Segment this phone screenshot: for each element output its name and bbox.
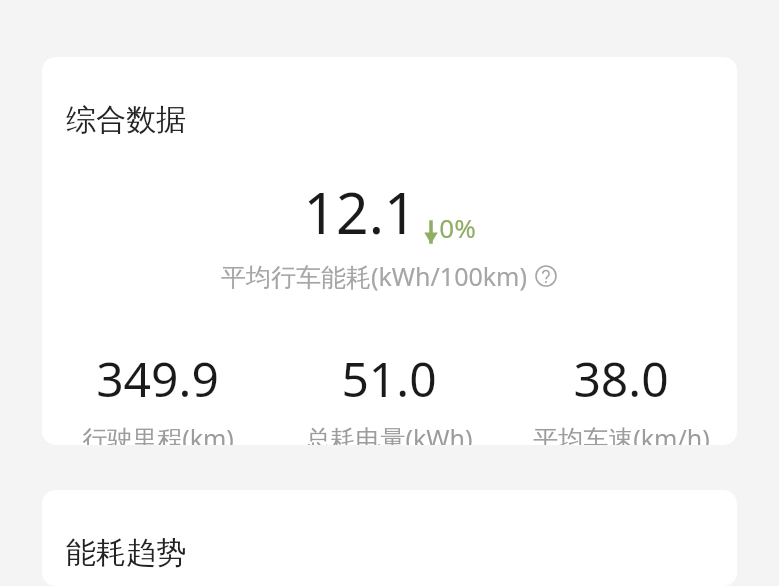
button[interactable]: 38.0 — [505, 346, 737, 445]
staticText: 349.9 — [96, 346, 219, 411]
other: Decrease — [423, 219, 439, 245]
button[interactable]: 综合数据 — [42, 57, 737, 445]
staticText: 平均车速(km/h) — [533, 421, 710, 445]
staticText: 51.0 — [341, 346, 437, 411]
button[interactable]: Help — [534, 264, 558, 288]
staticText: 12.1 — [303, 173, 417, 251]
button[interactable]: 能耗趋势 — [42, 490, 737, 586]
button[interactable]: 51.0 — [273, 346, 505, 445]
staticText: 38.0 — [573, 346, 669, 411]
staticText: 能耗趋势 — [66, 534, 186, 572]
button[interactable]: 349.9 — [42, 346, 273, 445]
staticText: 综合数据 — [66, 101, 186, 139]
staticText: 平均行车能耗(kWh/100km) — [221, 259, 527, 293]
staticText: 总耗电量(kWh) — [305, 421, 473, 445]
staticText: 行驶里程(km) — [82, 421, 234, 445]
staticText: 0% — [439, 210, 476, 245]
